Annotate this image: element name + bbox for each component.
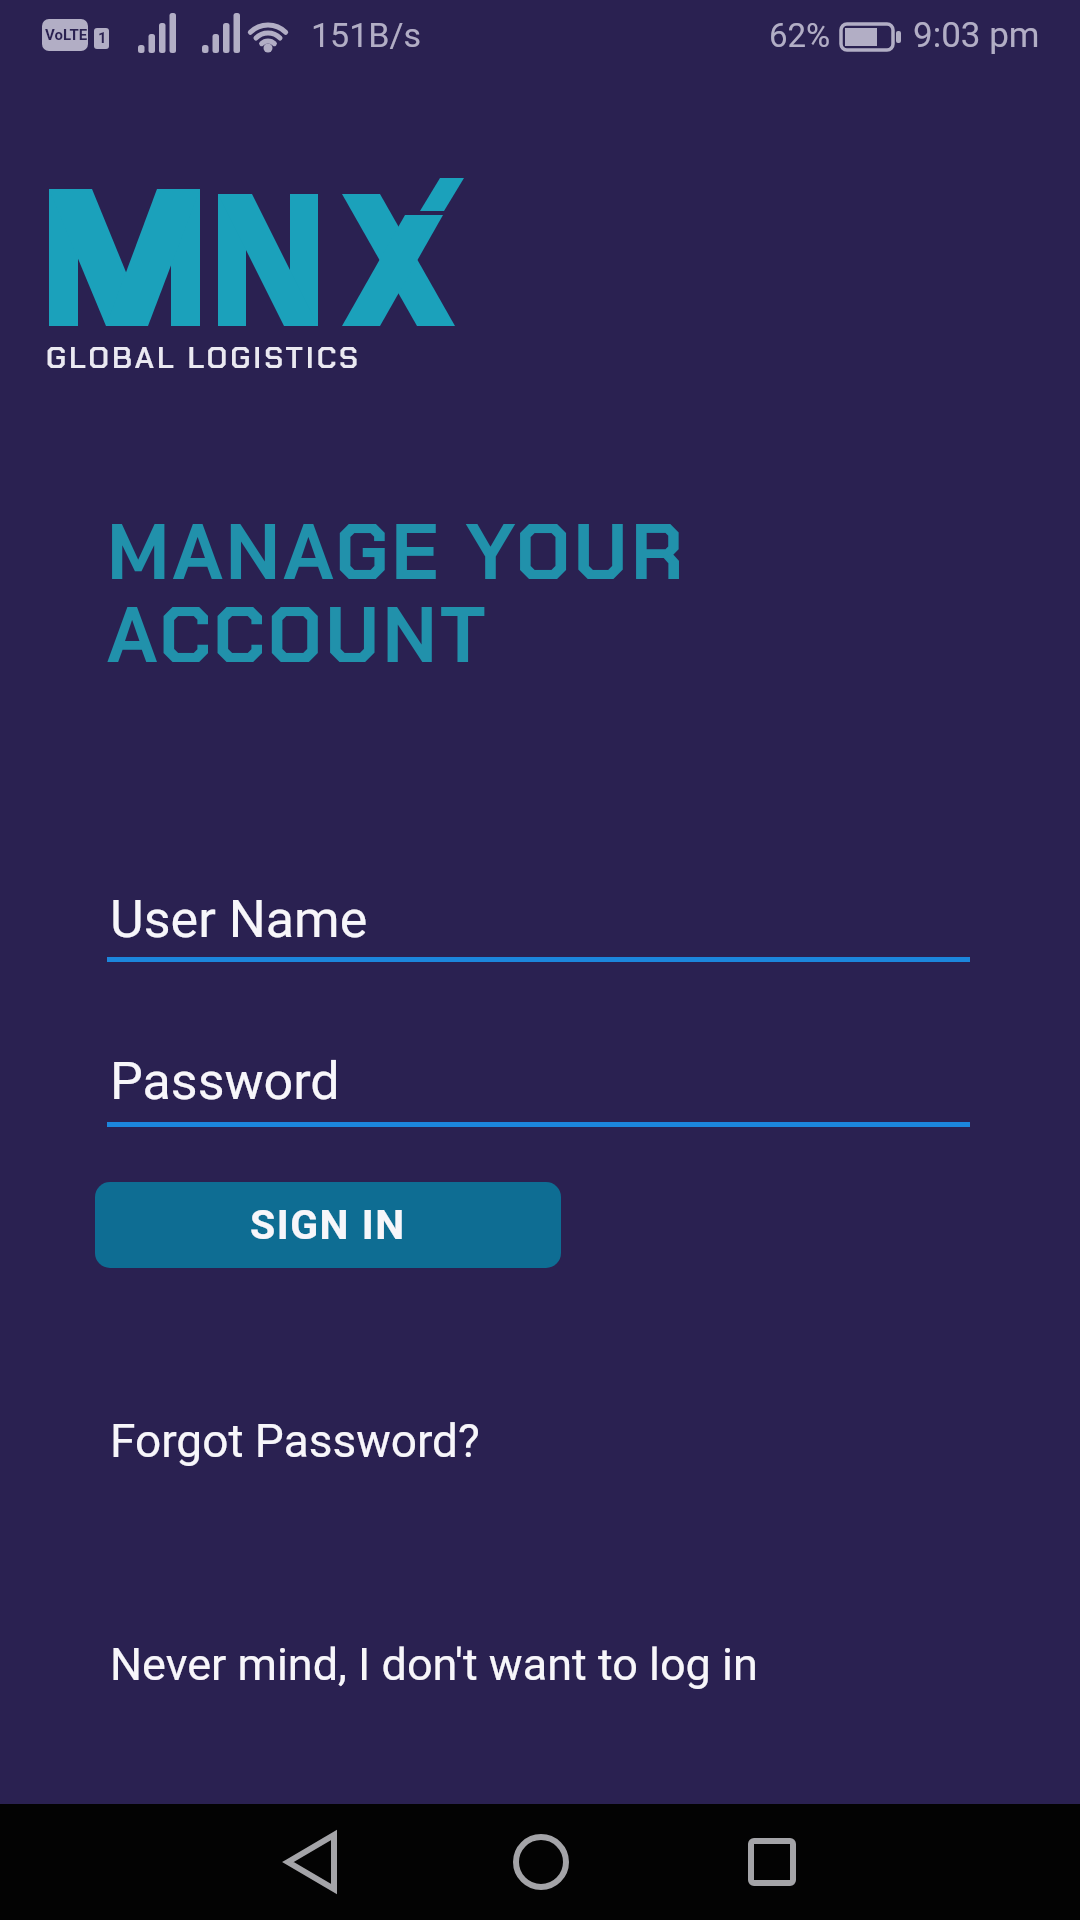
staticText: GLOBAL LOGISTICS <box>46 338 361 377</box>
staticText: Never mind, I don't want to log in <box>110 1638 758 1691</box>
button[interactable]: Password <box>107 1045 970 1127</box>
staticText: Forgot Password? <box>110 1414 480 1468</box>
staticText: SIGN IN <box>250 1201 406 1249</box>
button[interactable] <box>727 1818 815 1906</box>
button[interactable] <box>267 1818 355 1906</box>
button[interactable]: User Name <box>107 880 970 962</box>
button[interactable] <box>497 1818 585 1906</box>
staticText: 1 <box>98 29 107 47</box>
staticText: 151B/s <box>311 15 422 55</box>
staticText: 62% <box>769 16 831 55</box>
staticText: VoLTE <box>45 26 88 44</box>
staticText: User Name <box>110 889 368 950</box>
staticText: MANAGE YOUR ACCOUNT <box>107 502 687 686</box>
button[interactable]: Forgot Password? <box>110 1414 480 1468</box>
staticText: Password <box>110 1051 340 1112</box>
staticText: 9:03 pm <box>913 15 1040 56</box>
button[interactable]: Never mind, I don't want to log in <box>110 1638 758 1691</box>
button[interactable]: SIGN IN <box>95 1182 561 1268</box>
